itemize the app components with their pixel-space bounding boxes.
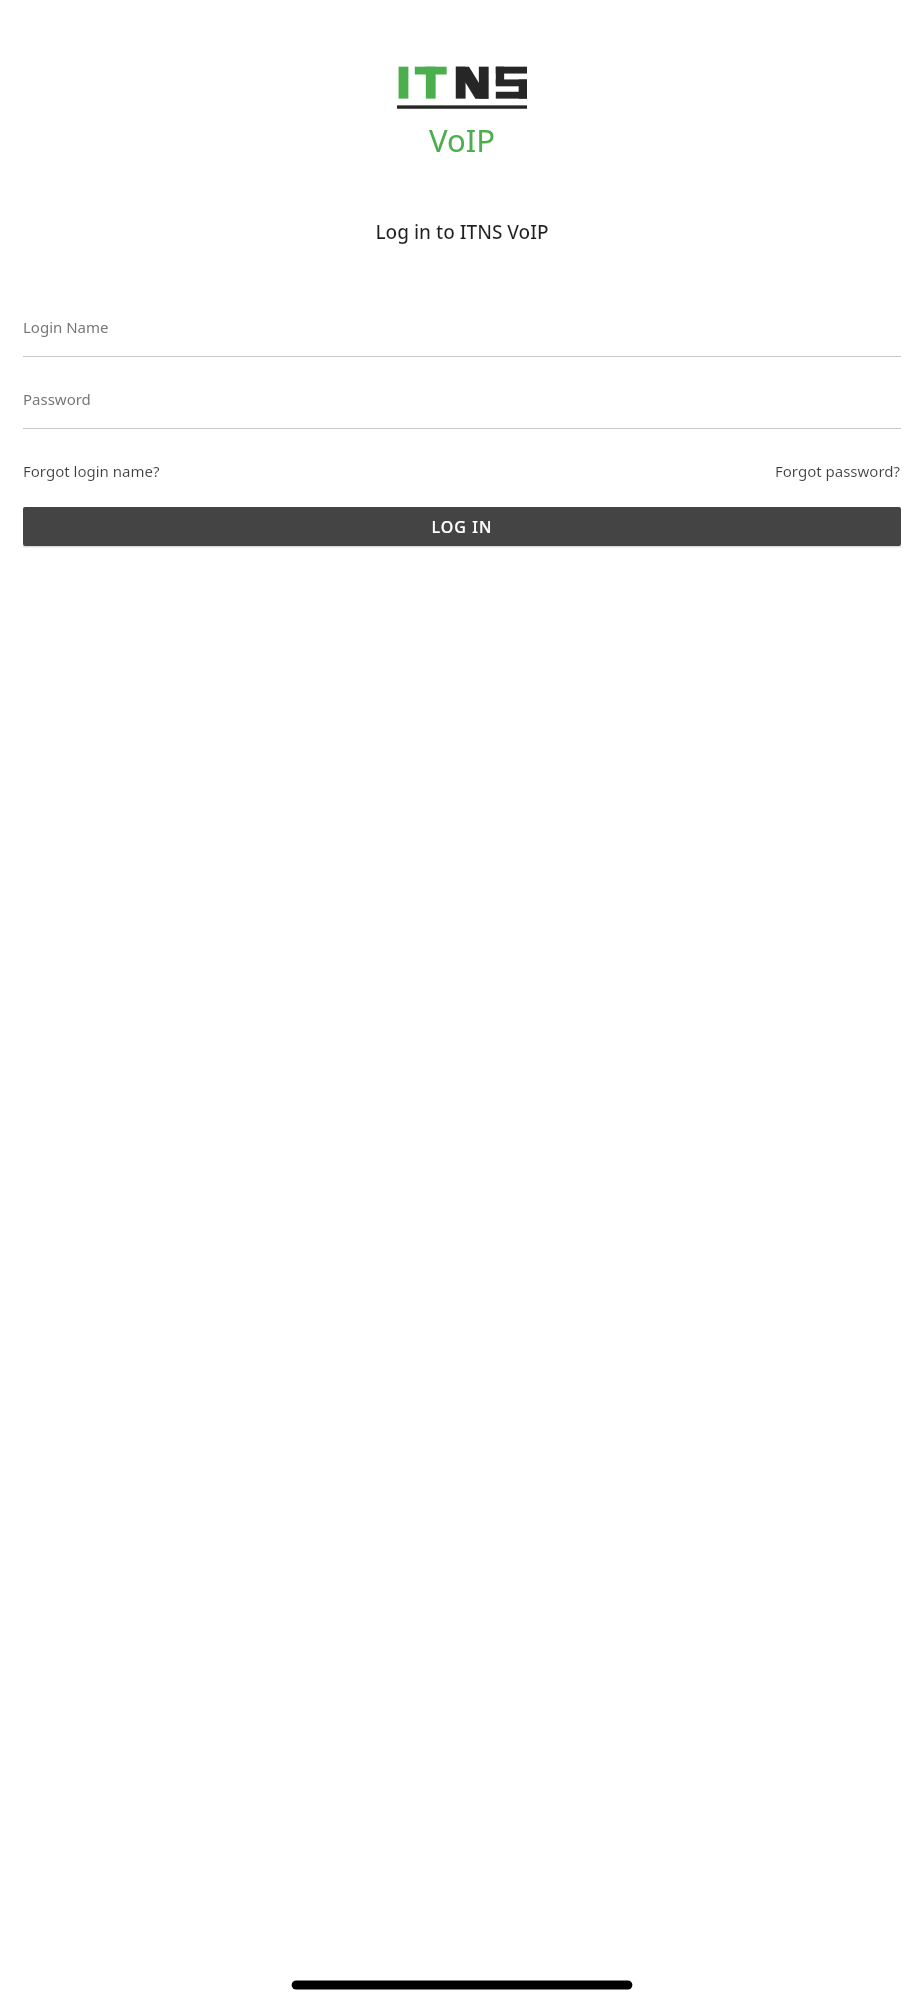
button[interactable]: Password xyxy=(23,376,901,429)
button[interactable]: LOG IN xyxy=(23,507,901,546)
staticText: Log in to ITNS VoIP xyxy=(375,219,549,245)
staticText: Forgot password? xyxy=(775,461,901,481)
staticText: Forgot login name? xyxy=(23,461,160,481)
button[interactable]: Login Name xyxy=(23,304,901,357)
button[interactable]: Forgot password? xyxy=(775,457,901,485)
button[interactable]: Forgot login name? xyxy=(23,457,160,485)
staticText: Password xyxy=(23,389,91,409)
staticText: LOG IN xyxy=(431,516,493,538)
staticText: Login Name xyxy=(23,317,109,337)
staticText: VoIP xyxy=(429,119,495,161)
